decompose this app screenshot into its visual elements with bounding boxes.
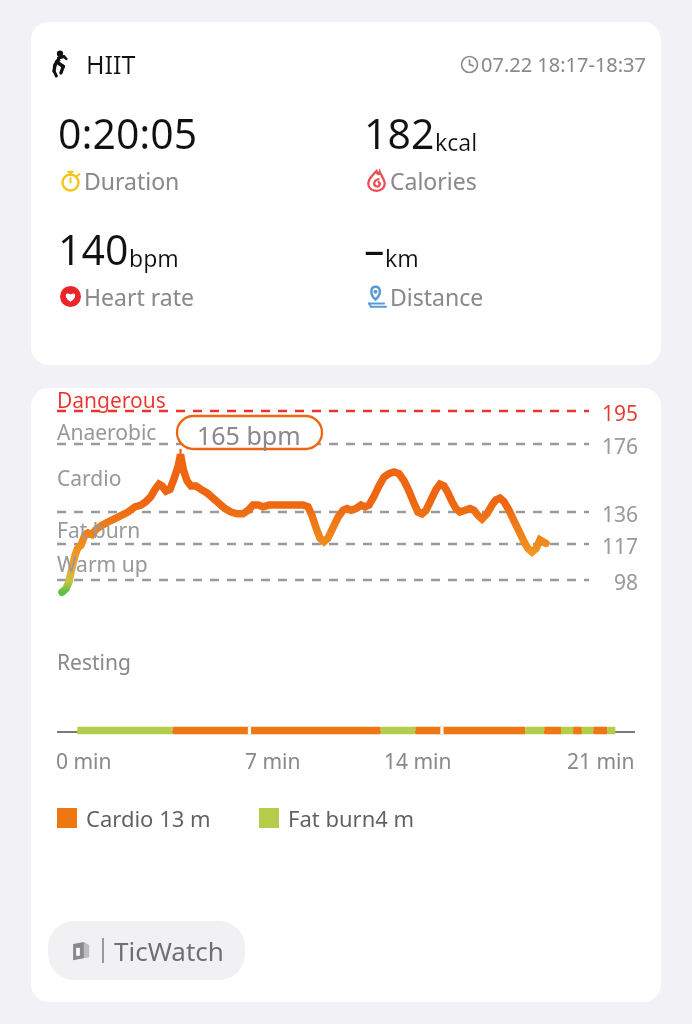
button[interactable]: Dangerous [31, 388, 661, 1002]
staticText: 176 [602, 432, 639, 461]
staticText: 0:20:05 [58, 105, 198, 161]
button[interactable]: Workout type HIIT [31, 22, 661, 365]
staticText: 21 min [567, 747, 635, 776]
staticText: Warm up [57, 550, 148, 579]
staticText: 7 min [245, 747, 301, 776]
button[interactable]: 140 [58, 221, 194, 312]
staticText: Duration [84, 165, 180, 196]
staticText: 140 [58, 221, 129, 277]
button[interactable]: 0:20:05 [58, 105, 198, 196]
staticText: Fat burn4 m [288, 803, 415, 833]
staticText: 07.22 18:17-18:37 [481, 51, 646, 78]
staticText: TicWatch [114, 933, 224, 968]
staticText: Anaerobic [57, 418, 157, 447]
staticText: 0 min [56, 747, 112, 776]
staticText: Cardio [57, 464, 122, 493]
staticText: km [385, 242, 419, 273]
staticText: Resting [57, 648, 131, 677]
staticText: kcal [435, 126, 478, 157]
button[interactable]: TicWatch [48, 921, 245, 980]
staticText: – [364, 221, 385, 277]
staticText: 136 [602, 500, 639, 529]
button[interactable]: 182 [364, 105, 478, 196]
staticText: Dangerous [57, 388, 166, 415]
staticText: Cardio 13 m [86, 803, 211, 833]
staticText: 182 [364, 105, 435, 161]
staticText: bpm [129, 242, 179, 273]
staticText: Heart rate [84, 281, 194, 312]
button[interactable]: – [364, 221, 484, 312]
staticText: Distance [390, 281, 484, 312]
other: Workout type HIIT [45, 49, 75, 79]
staticText: Calories [390, 165, 477, 196]
staticText: 14 min [384, 747, 452, 776]
staticText: 165 bpm [197, 418, 301, 452]
staticText: HIIT [86, 47, 136, 81]
staticText: 98 [614, 568, 639, 597]
staticText: Fat burn [57, 516, 141, 545]
staticText: 195 [602, 399, 639, 428]
staticText: 117 [602, 532, 639, 561]
